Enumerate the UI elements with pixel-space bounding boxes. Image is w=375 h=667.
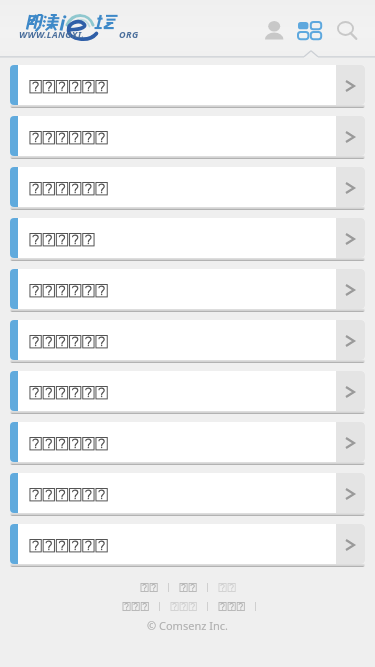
button[interactable] bbox=[10, 116, 365, 156]
button[interactable] bbox=[212, 581, 242, 594]
button[interactable] bbox=[10, 218, 365, 258]
staticText: ORG bbox=[119, 28, 139, 40]
button[interactable]: Account bbox=[252, 9, 288, 51]
button[interactable] bbox=[10, 65, 365, 105]
button[interactable]: Menu bbox=[291, 9, 327, 51]
staticText: © Comsenz Inc. bbox=[147, 618, 228, 633]
button[interactable] bbox=[10, 371, 365, 411]
button[interactable] bbox=[10, 422, 365, 462]
button[interactable] bbox=[10, 473, 365, 513]
button[interactable] bbox=[10, 269, 365, 309]
button[interactable] bbox=[164, 600, 203, 613]
button[interactable] bbox=[173, 581, 203, 594]
button[interactable] bbox=[116, 600, 155, 613]
button[interactable] bbox=[10, 320, 365, 360]
button[interactable] bbox=[212, 600, 251, 613]
button[interactable] bbox=[134, 581, 164, 594]
staticText: WWW.LANGXI. bbox=[19, 28, 85, 40]
button[interactable] bbox=[10, 167, 365, 207]
button[interactable] bbox=[10, 524, 365, 564]
button[interactable]: Search bbox=[326, 9, 364, 51]
